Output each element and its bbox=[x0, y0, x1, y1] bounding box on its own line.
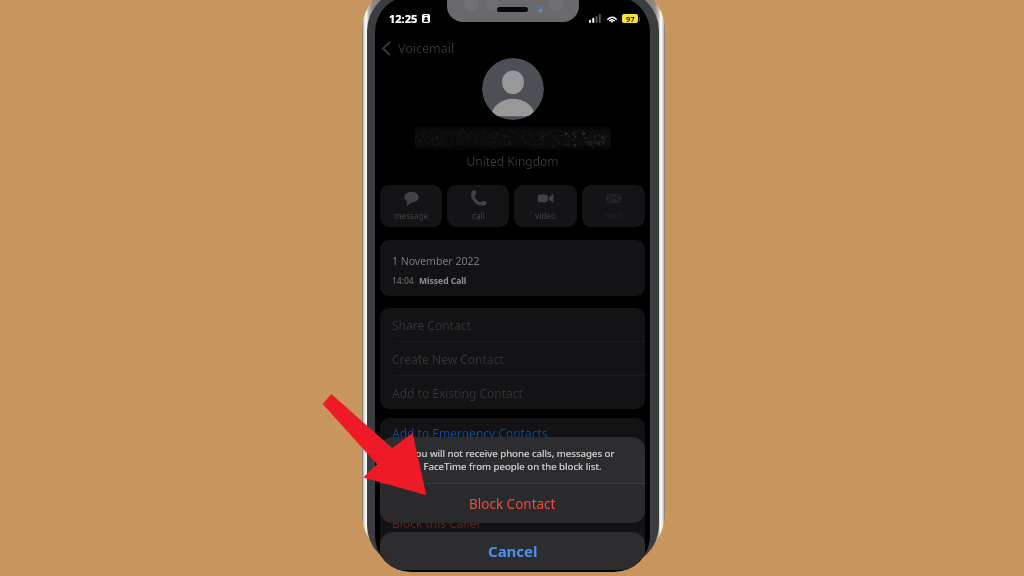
staticText: Voicemail bbox=[398, 40, 455, 57]
staticText: Share My Location bbox=[392, 455, 496, 471]
staticText: 12:25 bbox=[389, 11, 418, 26]
button[interactable]: call bbox=[447, 185, 509, 227]
button[interactable]: Share My Location bbox=[380, 448, 645, 477]
staticText: mail bbox=[605, 210, 622, 221]
staticText: You will not receive phone calls, messag… bbox=[410, 447, 615, 473]
staticText: Share Contact bbox=[392, 485, 471, 501]
staticText: Block this Caller bbox=[392, 515, 482, 531]
other: Back bbox=[382, 41, 391, 56]
staticText: Block Contact bbox=[469, 495, 556, 513]
button[interactable]: Block this Caller bbox=[380, 508, 645, 537]
staticText: Create New Contact bbox=[392, 351, 504, 367]
staticText: Add to Existing Contact bbox=[392, 385, 523, 401]
button[interactable]: Back bbox=[382, 40, 455, 57]
button[interactable]: Block Contact bbox=[380, 484, 645, 523]
staticText: United Kingdom bbox=[375, 153, 650, 169]
button[interactable]: 1 November 2022 bbox=[380, 240, 645, 296]
button[interactable]: Add to Existing Contact bbox=[380, 376, 645, 409]
staticText: 1 November 2022 bbox=[392, 254, 480, 268]
staticText: Missed Call bbox=[419, 275, 467, 287]
button[interactable]: video bbox=[514, 185, 577, 227]
button[interactable]: Share Contact bbox=[380, 478, 645, 507]
button[interactable]: message bbox=[380, 185, 442, 227]
button[interactable]: Add to Emergency Contacts bbox=[380, 418, 645, 447]
staticText: video bbox=[535, 210, 556, 221]
staticText: call bbox=[472, 210, 485, 221]
staticText: 14:04 bbox=[392, 275, 414, 287]
button[interactable]: Cancel bbox=[380, 532, 645, 570]
button[interactable]: Report Junk bbox=[380, 538, 645, 567]
staticText: 97 bbox=[626, 14, 635, 23]
staticText: Add to Emergency Contacts bbox=[392, 425, 548, 441]
button[interactable]: Create New Contact bbox=[380, 342, 645, 375]
staticText: message bbox=[394, 210, 429, 221]
staticText: Share Contact bbox=[392, 317, 471, 333]
button[interactable]: mail bbox=[582, 185, 645, 227]
button[interactable]: Share Contact bbox=[380, 308, 645, 341]
staticText: Cancel bbox=[488, 541, 538, 561]
